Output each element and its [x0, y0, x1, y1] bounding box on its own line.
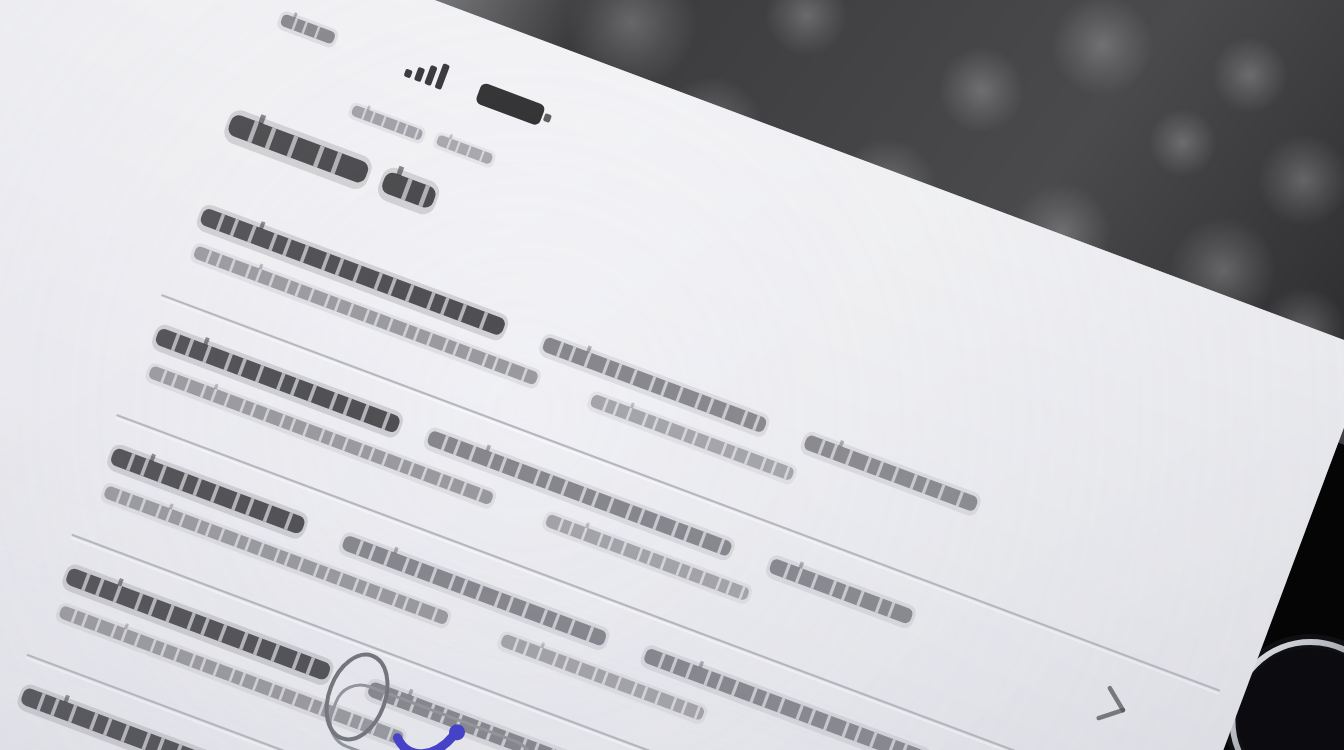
button[interactable]: Phone showing a settings list screen: [0, 0, 1344, 750]
